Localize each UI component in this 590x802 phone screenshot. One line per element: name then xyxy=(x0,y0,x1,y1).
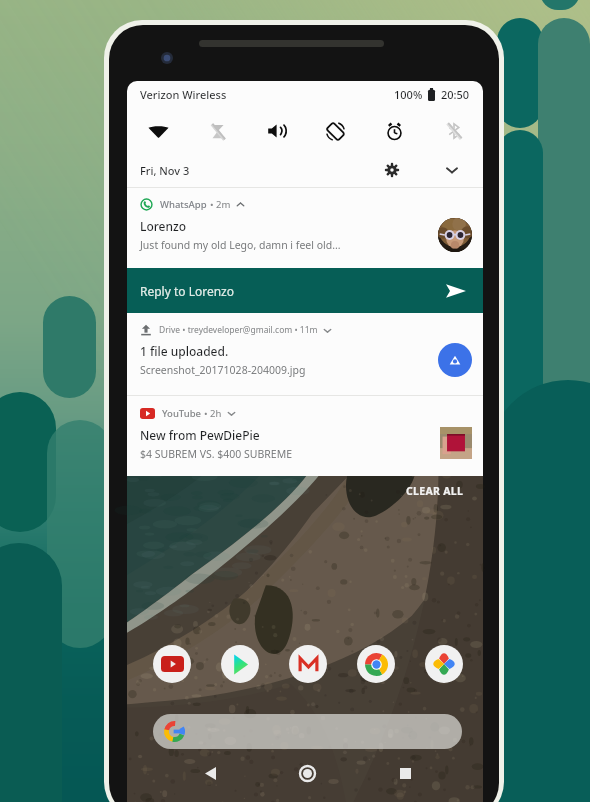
button[interactable]: Recents xyxy=(393,761,417,785)
button[interactable]: Photos xyxy=(425,645,463,683)
button[interactable]: Google search xyxy=(153,714,462,749)
staticText: 100% xyxy=(394,87,423,102)
staticText: YouTube xyxy=(162,407,201,420)
button[interactable]: Mobile data off xyxy=(188,108,247,154)
staticText: Lorenzo xyxy=(140,218,187,234)
button[interactable]: Reply to Lorenzo xyxy=(127,268,483,313)
button[interactable]: Expand quick settings xyxy=(438,156,466,184)
button[interactable]: Settings xyxy=(378,156,406,184)
staticText: Just found my old Lego, damn i feel old.… xyxy=(140,238,341,252)
staticText: Screenshot_20171028-204009.jpg xyxy=(140,363,306,377)
button[interactable]: Bluetooth off xyxy=(424,108,483,154)
button[interactable]: YouTube xyxy=(127,396,483,476)
button[interactable]: Back xyxy=(198,761,222,785)
staticText: Fri, Nov 3 xyxy=(140,163,190,178)
button[interactable]: Volume xyxy=(247,108,306,154)
button[interactable]: Send xyxy=(445,280,467,302)
button[interactable]: Home xyxy=(295,761,319,785)
staticText: 20:50 xyxy=(441,87,470,102)
staticText: 1 file uploaded. xyxy=(140,343,229,359)
button[interactable]: Chrome xyxy=(357,645,395,683)
button[interactable]: YouTube xyxy=(153,645,191,683)
button[interactable]: Gmail xyxy=(289,645,327,683)
button[interactable]: Drive • treydeveloper@gmail.com • 11m xyxy=(127,313,483,395)
staticText: $4 SUBREM VS. $400 SUBREME xyxy=(140,447,292,461)
button[interactable]: CLEAR ALL xyxy=(406,484,464,498)
staticText: Reply to Lorenzo xyxy=(140,283,235,299)
staticText: CLEAR ALL xyxy=(406,484,464,498)
button[interactable]: Auto rotate xyxy=(306,108,365,154)
staticText: WhatsApp xyxy=(160,198,207,211)
button[interactable]: Wi-Fi xyxy=(129,108,188,154)
staticText: New from PewDiePie xyxy=(140,427,260,443)
staticText: Drive • treydeveloper@gmail.com • 11m xyxy=(159,324,318,336)
staticText: • 2h xyxy=(204,407,222,420)
button[interactable]: Alarm xyxy=(365,108,424,154)
button[interactable]: WhatsApp xyxy=(127,188,483,268)
staticText: • 2m xyxy=(210,198,231,211)
staticText: Verizon Wireless xyxy=(140,87,227,102)
button[interactable]: Play Store xyxy=(221,645,259,683)
